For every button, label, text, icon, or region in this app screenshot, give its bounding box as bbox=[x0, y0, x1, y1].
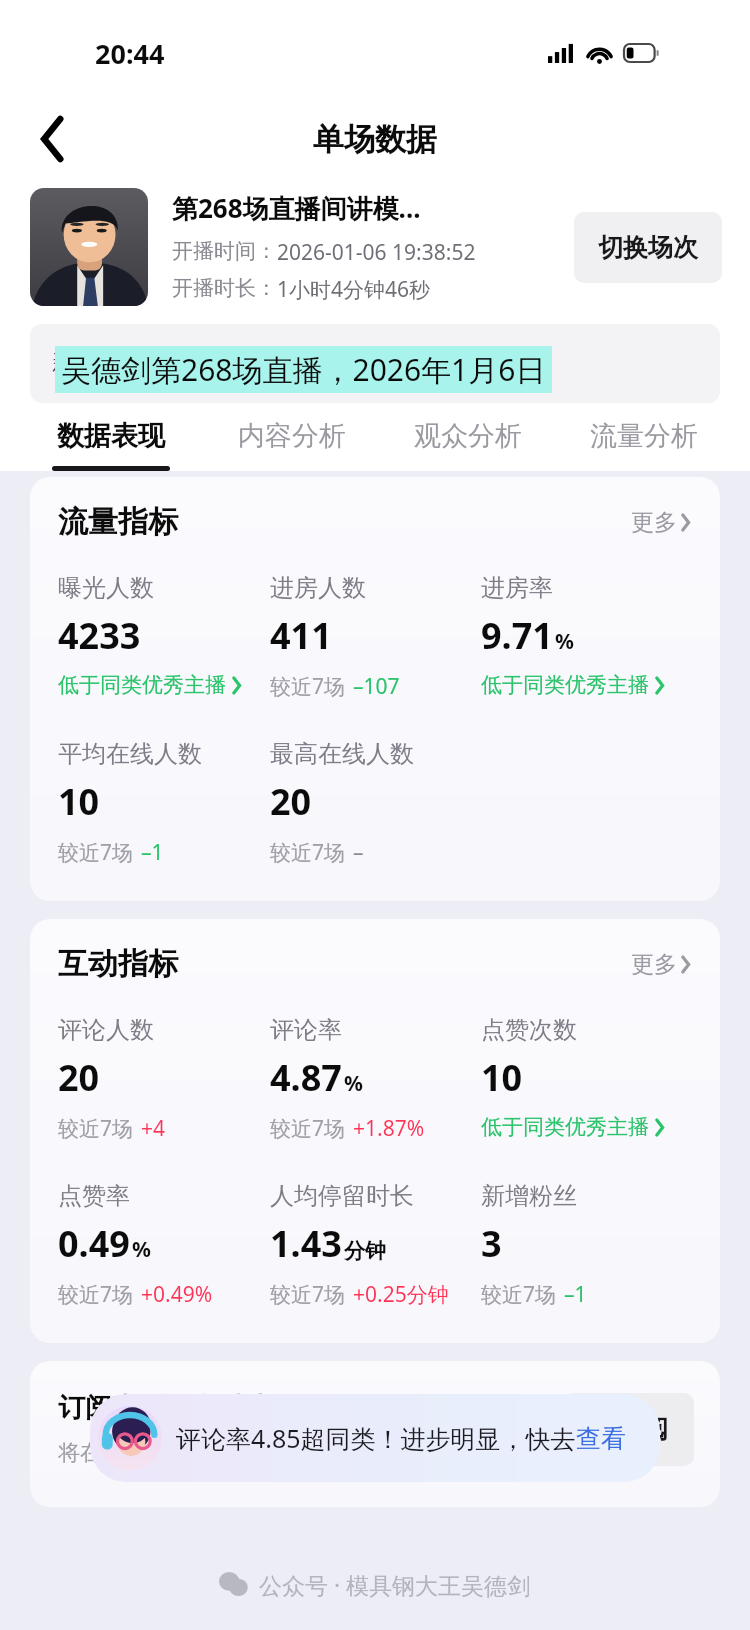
staticText: +0.49% bbox=[141, 1280, 213, 1309]
staticText: 低于同类优秀主播 bbox=[481, 1114, 649, 1140]
staticText: 第268场直播间讲模... bbox=[172, 190, 421, 226]
staticText: 4.87 bbox=[270, 1053, 342, 1102]
staticText: 人均停留时长 bbox=[270, 1181, 414, 1211]
staticText: 点赞次数 bbox=[481, 1015, 577, 1045]
staticText: % bbox=[555, 627, 574, 656]
staticText: 新增粉丝超过了 bbox=[52, 348, 213, 377]
staticText: 开播时间： bbox=[172, 238, 277, 264]
staticText: 2026-01-06 19:38:52 bbox=[277, 238, 476, 267]
button[interactable]: 已订阅 bbox=[564, 1393, 694, 1466]
staticText: +4 bbox=[141, 1114, 166, 1143]
staticText: 已订阅 bbox=[590, 1413, 668, 1446]
staticText: 内容分析 bbox=[238, 419, 346, 453]
staticText: 更多 bbox=[631, 950, 677, 979]
staticText: 流量指标 bbox=[58, 503, 178, 541]
staticText: 更多 bbox=[631, 508, 677, 537]
staticText: % bbox=[344, 1069, 363, 1098]
button[interactable]: 评论率4.85超同类！进步明显，快去 bbox=[90, 1394, 660, 1482]
staticText: 平均在线人数 bbox=[58, 739, 202, 769]
button[interactable]: 低于同类优秀主播 bbox=[58, 672, 241, 698]
staticText: 吴德剑第268场直播，2026年1月6日 bbox=[61, 349, 546, 390]
staticText: 较近7场 bbox=[58, 1280, 134, 1309]
staticText: % bbox=[132, 1235, 151, 1264]
staticText: –107 bbox=[353, 672, 400, 701]
staticText: 评论人数 bbox=[58, 1015, 154, 1045]
staticText: 20 bbox=[58, 1053, 100, 1102]
staticText: 评论率 bbox=[270, 1015, 342, 1045]
button[interactable]: 低于同类优秀主播 bbox=[481, 672, 664, 698]
staticText: 互动指标 bbox=[58, 945, 178, 983]
staticText: 将在次日推送数据复盘 bbox=[58, 1439, 278, 1467]
staticText: 同级别主播 bbox=[261, 348, 382, 379]
staticText: 10 bbox=[58, 777, 100, 826]
staticText: 9.71 bbox=[481, 611, 553, 660]
staticText: 最高在线人数 bbox=[270, 739, 414, 769]
staticText: – bbox=[353, 838, 364, 867]
staticText: 观众分析 bbox=[414, 419, 522, 453]
staticText: 1小时4分钟46秒 bbox=[277, 275, 431, 304]
staticText: 低于同类优秀主播 bbox=[481, 672, 649, 698]
staticText: 较近7场 bbox=[270, 1114, 346, 1143]
button[interactable]: 内容分析 bbox=[234, 419, 350, 471]
staticText: 单场数据 bbox=[313, 120, 437, 159]
button[interactable]: 流量分析 bbox=[586, 419, 702, 471]
staticText: 评论率4.85超同类！进步明显，快去 bbox=[176, 1421, 576, 1455]
button[interactable]: Back bbox=[22, 108, 84, 170]
staticText: 点赞率 bbox=[58, 1181, 130, 1211]
staticText: 10 bbox=[481, 1053, 523, 1102]
button[interactable]: 更多 bbox=[627, 504, 694, 541]
staticText: 公众号 · 模具钢大王吴德剑 bbox=[259, 1569, 531, 1600]
staticText: 20 bbox=[270, 777, 312, 826]
staticText: 3 bbox=[481, 1219, 502, 1268]
staticText: 较近7场 bbox=[481, 1280, 557, 1309]
staticText: 新增粉丝 bbox=[481, 1181, 577, 1211]
staticText: 较近7场 bbox=[270, 672, 346, 701]
staticText: 411 bbox=[270, 611, 332, 660]
staticText: –1 bbox=[141, 838, 164, 867]
button[interactable]: 低于同类优秀主播 bbox=[481, 1114, 664, 1140]
staticText: 较近7场 bbox=[58, 1114, 134, 1143]
staticText: 查看 bbox=[576, 1423, 626, 1454]
staticText: 20:44 bbox=[95, 35, 165, 72]
button[interactable]: 查看 bbox=[576, 1423, 626, 1454]
staticText: 1.43 bbox=[270, 1219, 342, 1268]
staticText: –1 bbox=[564, 1280, 587, 1309]
staticText: 较近7场 bbox=[58, 838, 134, 867]
staticText: 0.49 bbox=[58, 1219, 130, 1268]
staticText: +0.25分钟 bbox=[353, 1280, 449, 1309]
staticText: 分钟 bbox=[344, 1238, 386, 1264]
button[interactable]: 数据表现 bbox=[48, 419, 174, 471]
staticText: 低于同类优秀主播 bbox=[58, 672, 226, 698]
staticText: 流量分析 bbox=[590, 419, 698, 453]
staticText: 开播时长： bbox=[172, 275, 277, 301]
staticText: 数据表现 bbox=[57, 419, 165, 453]
staticText: 进房率 bbox=[481, 573, 553, 603]
staticText: 切换场次 bbox=[598, 232, 698, 263]
staticText: 较近7场 bbox=[270, 1280, 346, 1309]
staticText: 77% bbox=[213, 348, 261, 379]
staticText: 曝光人数 bbox=[58, 573, 154, 603]
staticText: 进房人数 bbox=[270, 573, 366, 603]
button[interactable]: 观众分析 bbox=[410, 419, 526, 471]
button[interactable]: 切换场次 bbox=[574, 212, 722, 283]
staticText: 订阅直播复盘站内信 bbox=[58, 1391, 301, 1425]
staticText: 较近7场 bbox=[270, 838, 346, 867]
staticText: +1.87% bbox=[353, 1114, 425, 1143]
button[interactable]: 更多 bbox=[627, 946, 694, 983]
staticText: 4233 bbox=[58, 611, 141, 660]
